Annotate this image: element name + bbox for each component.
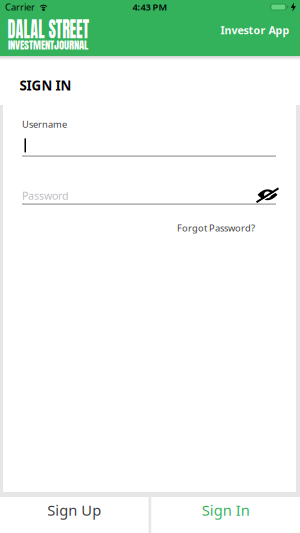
staticText: Investor App (220, 23, 289, 37)
button[interactable]: Forgot Password? (177, 222, 255, 234)
staticText: 4:43 PM (132, 1, 167, 13)
button[interactable]: Show password (256, 187, 279, 202)
staticText: SIGN IN (19, 76, 71, 94)
staticText: Sign In (202, 500, 250, 520)
button[interactable]: Sign Up (0, 497, 148, 533)
staticText: Password (22, 189, 69, 203)
staticText: Carrier (5, 1, 35, 13)
staticText: Forgot Password? (177, 222, 255, 234)
button[interactable]: Sign In (151, 497, 300, 533)
button[interactable]: Password (22, 188, 276, 205)
staticText: Username (22, 118, 67, 130)
staticText: INVESTMENTJOURNAL (8, 37, 88, 53)
staticText: DALAL STREET (7, 12, 119, 45)
staticText: Sign Up (47, 500, 101, 520)
button[interactable]: Username (22, 118, 276, 157)
